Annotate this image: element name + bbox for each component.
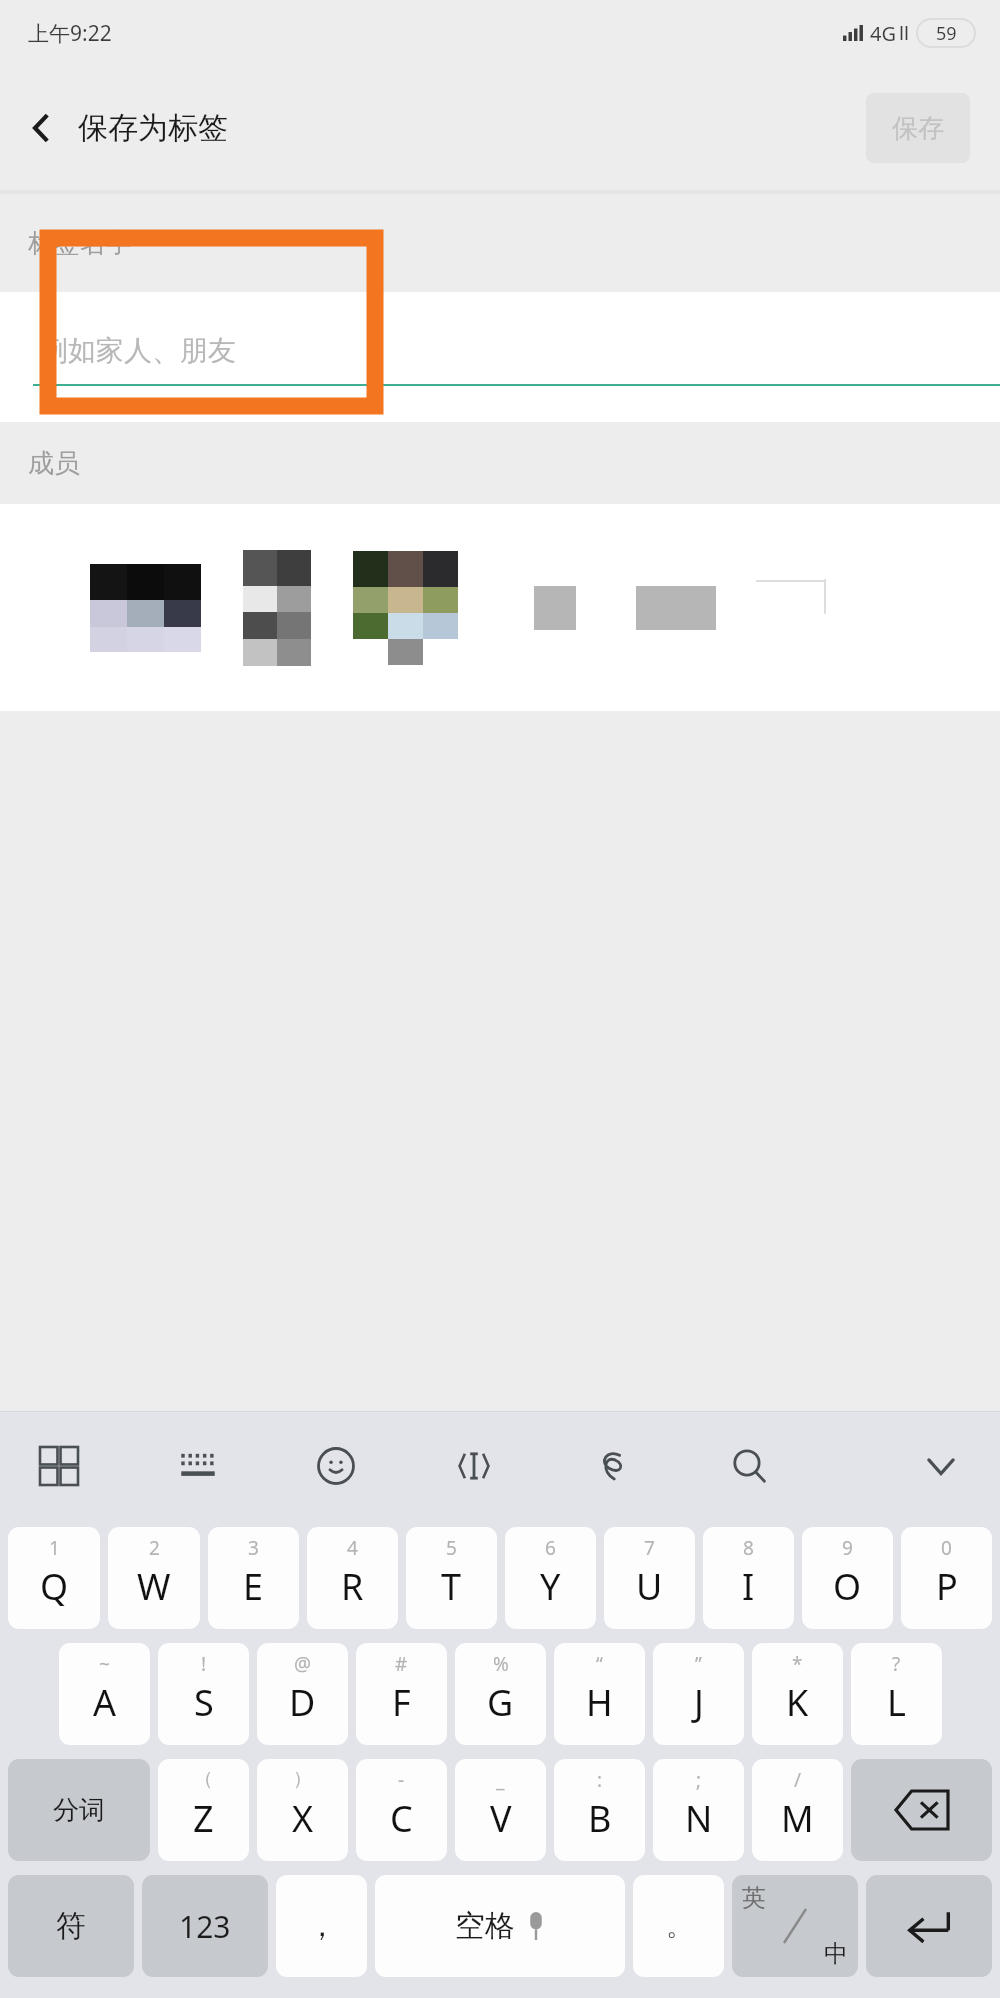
other: Language switch bbox=[770, 1901, 820, 1951]
staticText: 成员 bbox=[28, 447, 80, 480]
staticText: _ bbox=[496, 1767, 505, 1793]
staticText: 4G bbox=[870, 20, 896, 47]
button[interactable]: Attach bbox=[581, 1435, 643, 1497]
button[interactable]: ! bbox=[158, 1643, 249, 1745]
staticText: 空格 bbox=[455, 1907, 515, 1945]
button[interactable] bbox=[243, 550, 311, 666]
staticText: I bbox=[742, 1562, 755, 1611]
button[interactable]: ， bbox=[276, 1875, 367, 1977]
button[interactable]: ; bbox=[653, 1759, 744, 1861]
button[interactable]: “ bbox=[554, 1643, 645, 1745]
staticText: ~ bbox=[99, 1651, 110, 1677]
button[interactable]: 6 bbox=[505, 1527, 596, 1629]
staticText: J bbox=[694, 1678, 704, 1727]
staticText: O bbox=[833, 1562, 862, 1611]
other: Back bbox=[26, 113, 56, 143]
button[interactable]: ? bbox=[851, 1643, 942, 1745]
button[interactable]: （ bbox=[158, 1759, 249, 1861]
button[interactable]: 空格 bbox=[375, 1875, 625, 1977]
button[interactable]: Cursor bbox=[443, 1435, 505, 1497]
staticText: G bbox=[487, 1678, 514, 1727]
staticText: ? bbox=[892, 1651, 901, 1677]
staticText: ） bbox=[293, 1767, 312, 1791]
staticText: 英 bbox=[742, 1883, 766, 1913]
button[interactable]: Backspace bbox=[851, 1759, 992, 1861]
button[interactable]: / bbox=[752, 1759, 843, 1861]
staticText: 3 bbox=[248, 1535, 259, 1561]
staticText: 例如家人、朋友 bbox=[40, 333, 236, 368]
button[interactable]: @ bbox=[257, 1643, 348, 1745]
staticText: 标签名字 bbox=[28, 227, 132, 260]
staticText: ! bbox=[201, 1651, 207, 1677]
button[interactable]: : bbox=[554, 1759, 645, 1861]
staticText: W bbox=[137, 1562, 171, 1611]
staticText: : bbox=[597, 1767, 603, 1793]
staticText: @ bbox=[294, 1651, 312, 1677]
staticText: P bbox=[936, 1562, 958, 1611]
button[interactable]: ） bbox=[257, 1759, 348, 1861]
staticText: U bbox=[636, 1562, 663, 1611]
button[interactable]: 9 bbox=[802, 1527, 893, 1629]
button[interactable]: 。 bbox=[633, 1875, 724, 1977]
button[interactable]: 3 bbox=[208, 1527, 299, 1629]
button[interactable] bbox=[90, 564, 201, 652]
button[interactable]: Keyboard bbox=[167, 1435, 229, 1497]
button[interactable]: 8 bbox=[703, 1527, 794, 1629]
staticText: X bbox=[292, 1794, 314, 1843]
staticText: V bbox=[490, 1794, 512, 1843]
button[interactable] bbox=[353, 551, 458, 665]
button[interactable]: % bbox=[455, 1643, 546, 1745]
button[interactable]: 1 bbox=[8, 1527, 100, 1629]
staticText: D bbox=[289, 1678, 316, 1727]
button[interactable]: Emoji bbox=[305, 1435, 367, 1497]
staticText: K bbox=[786, 1678, 809, 1727]
staticText: E bbox=[243, 1562, 264, 1611]
staticText: （ bbox=[194, 1767, 213, 1791]
staticText: - bbox=[398, 1767, 405, 1793]
button[interactable]: 分词 bbox=[8, 1759, 150, 1861]
staticText: 4 bbox=[347, 1535, 358, 1561]
button[interactable]: 2 bbox=[108, 1527, 200, 1629]
staticText: Y bbox=[540, 1562, 561, 1611]
staticText: 。 bbox=[666, 1910, 692, 1943]
staticText: 9 bbox=[842, 1535, 853, 1561]
staticText: 分词 bbox=[53, 1794, 105, 1827]
staticText: F bbox=[392, 1678, 411, 1727]
staticText: / bbox=[794, 1767, 802, 1793]
button[interactable]: 4 bbox=[307, 1527, 398, 1629]
button[interactable]: 7 bbox=[604, 1527, 695, 1629]
staticText: * bbox=[792, 1651, 803, 1677]
button[interactable]: Hide keyboard bbox=[910, 1435, 972, 1497]
button[interactable]: _ bbox=[455, 1759, 546, 1861]
button[interactable]: Enter bbox=[866, 1875, 992, 1977]
staticText: % bbox=[493, 1651, 509, 1677]
button[interactable]: 5 bbox=[406, 1527, 497, 1629]
button[interactable]: ” bbox=[653, 1643, 744, 1745]
button[interactable]: 123 bbox=[142, 1875, 268, 1977]
button[interactable]: 符 bbox=[8, 1875, 134, 1977]
staticText: 2 bbox=[149, 1535, 160, 1561]
staticText: S bbox=[194, 1678, 214, 1727]
staticText: 中 bbox=[824, 1939, 848, 1969]
button[interactable]: ~ bbox=[59, 1643, 150, 1745]
staticText: L bbox=[887, 1678, 906, 1727]
button[interactable]: 保存 bbox=[866, 93, 970, 163]
staticText: C bbox=[390, 1794, 413, 1843]
button[interactable]: - bbox=[356, 1759, 447, 1861]
staticText: N bbox=[685, 1794, 713, 1843]
staticText: 0 bbox=[941, 1535, 952, 1561]
button[interactable]: Language switch bbox=[732, 1875, 858, 1977]
staticText: B bbox=[588, 1794, 612, 1843]
button[interactable]: Back bbox=[0, 99, 244, 157]
button[interactable]: Search bbox=[719, 1435, 781, 1497]
other: Enter bbox=[906, 1908, 952, 1944]
button[interactable]: Grid bbox=[28, 1435, 90, 1497]
staticText: 上午9:22 bbox=[28, 19, 112, 48]
staticText: # bbox=[395, 1651, 408, 1677]
staticText: M bbox=[781, 1794, 814, 1843]
button[interactable]: # bbox=[356, 1643, 447, 1745]
button[interactable]: 0 bbox=[901, 1527, 992, 1629]
button[interactable]: * bbox=[752, 1643, 843, 1745]
